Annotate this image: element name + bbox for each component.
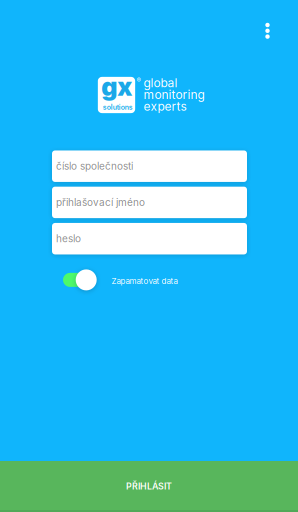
staticText: gx (101, 71, 132, 102)
staticText: experts (143, 99, 186, 114)
staticText: Zapamatovat data (111, 276, 177, 286)
button[interactable]: More options (249, 11, 285, 51)
button[interactable]: přihlašovací jméno (52, 187, 247, 218)
staticText: monitoring (143, 87, 204, 102)
staticText: ® (136, 76, 140, 84)
button[interactable]: heslo (52, 223, 247, 254)
staticText: přihlašovací jméno (56, 196, 145, 208)
staticText: solutions (103, 103, 133, 111)
button[interactable]: Zapamatovat data (63, 267, 185, 293)
staticText: global (143, 76, 177, 90)
button[interactable]: číslo společnosti (52, 150, 247, 182)
staticText: PŘIHLÁSIT (126, 481, 172, 492)
staticText: heslo (56, 233, 81, 245)
button[interactable]: PŘIHLÁSIT (0, 461, 298, 512)
staticText: číslo společnosti (56, 160, 133, 172)
